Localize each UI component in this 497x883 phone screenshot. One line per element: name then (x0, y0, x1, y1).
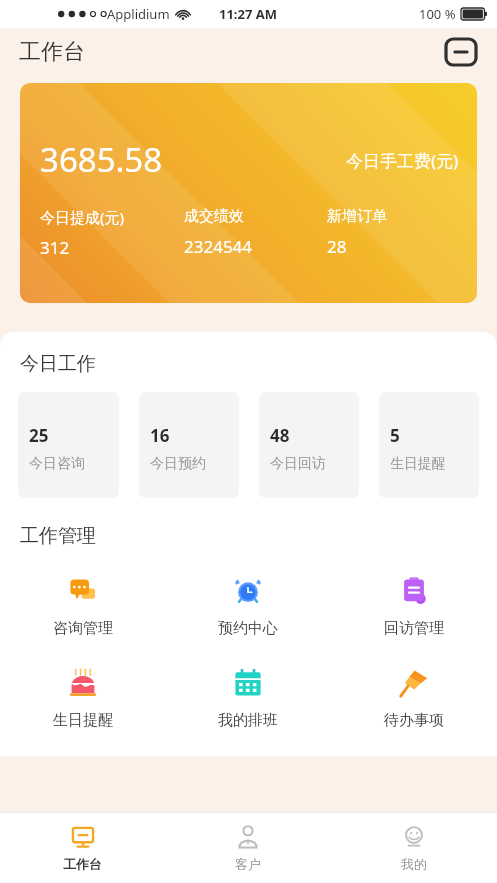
staticText: 成交绩效 (184, 207, 244, 226)
button[interactable]: 生日提醒 (0, 662, 165, 734)
button[interactable]: 预约中心 (165, 570, 331, 642)
button[interactable]: 25 (18, 392, 119, 498)
staticText: 工作台 (19, 38, 85, 66)
staticText: 工作管理 (20, 524, 96, 548)
button[interactable]: 咨询管理 (0, 570, 165, 642)
staticText: 待办事项 (384, 711, 444, 730)
staticText: 5 (390, 424, 400, 447)
staticText: 48 (270, 424, 290, 447)
staticText: 我的 (401, 856, 427, 872)
button[interactable]: 我的排班 (165, 662, 331, 734)
staticText: 生日提醒 (53, 711, 113, 730)
staticText: 28 (327, 235, 347, 258)
button[interactable]: 待办事项 (331, 662, 497, 734)
staticText: Applidium (107, 5, 170, 23)
staticText: 今日咨询 (29, 455, 85, 473)
staticText: 312 (40, 236, 70, 259)
button[interactable]: 48 (259, 392, 359, 498)
staticText: 今日手工费(元) (346, 149, 459, 172)
staticText: 回访管理 (384, 619, 444, 638)
staticText: 11:27 AM (219, 5, 278, 23)
staticText: 25 (29, 424, 49, 447)
button[interactable]: 工作台 (0, 813, 165, 883)
staticText: 3685.58 (40, 137, 163, 182)
button[interactable]: 5 (379, 392, 479, 498)
staticText: 2324544 (184, 235, 253, 258)
button[interactable]: 客户 (165, 813, 331, 883)
button[interactable]: 我的 (331, 813, 497, 883)
button[interactable]: 回访管理 (331, 570, 497, 642)
staticText: 生日提醒 (390, 455, 446, 473)
staticText: 预约中心 (218, 619, 278, 638)
button[interactable]: 16 (139, 392, 239, 498)
staticText: 今日提成(元) (40, 207, 125, 227)
staticText: 今日工作 (20, 352, 96, 376)
staticText: 客户 (235, 856, 261, 872)
button[interactable]: Minimize (443, 34, 479, 70)
staticText: 我的排班 (218, 711, 278, 730)
staticText: 今日回访 (270, 455, 326, 473)
staticText: 100 % (419, 5, 456, 23)
staticText: 咨询管理 (53, 619, 113, 638)
staticText: 16 (150, 424, 170, 447)
staticText: 今日预约 (150, 455, 206, 473)
staticText: 工作台 (63, 856, 102, 872)
staticText: 新增订单 (327, 207, 387, 226)
button[interactable]: 3685.58 (20, 83, 477, 303)
